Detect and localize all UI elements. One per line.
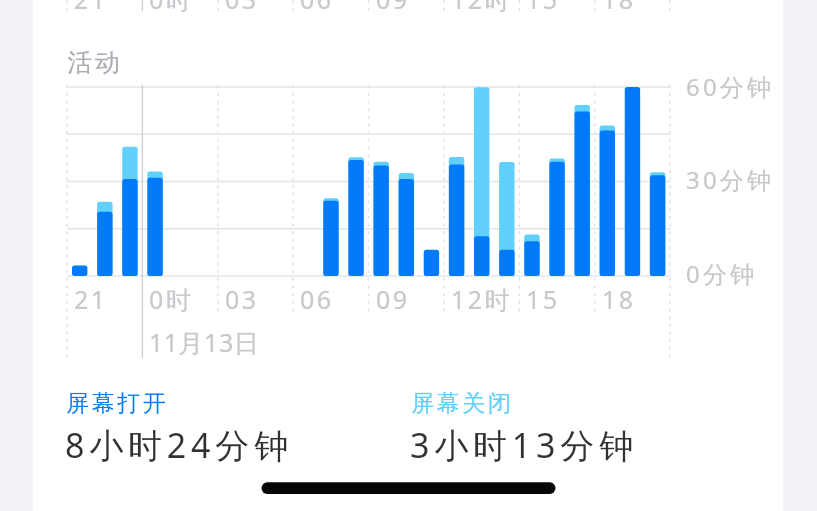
staticText: 30分钟 <box>686 163 775 196</box>
staticText: 15 <box>526 282 560 316</box>
staticText: 屏幕打开 <box>65 389 167 418</box>
button[interactable]: 主屏幕指示条 <box>261 478 556 498</box>
staticText: 09 <box>376 282 410 316</box>
staticText: 屏幕关闭 <box>410 389 512 418</box>
staticText: 18 <box>602 282 636 316</box>
staticText: 3小时13分钟 <box>410 422 638 468</box>
button[interactable]: 活动图表 <box>67 81 670 282</box>
staticText: 0时 <box>149 282 194 316</box>
staticText: 18 <box>602 0 636 16</box>
staticText: 09 <box>376 0 410 16</box>
staticText: 03 <box>225 0 259 16</box>
staticText: 11月13日 <box>149 325 260 359</box>
staticText: 0分钟 <box>686 257 758 290</box>
staticText: 06 <box>300 282 334 316</box>
staticText: 8小时24分钟 <box>65 422 293 468</box>
staticText: 21 <box>74 282 108 316</box>
staticText: 12时 <box>451 282 513 316</box>
staticText: 0时 <box>149 0 194 16</box>
staticText: 06 <box>300 0 334 16</box>
staticText: 活动 <box>66 47 121 78</box>
button[interactable]: 屏幕关闭 <box>410 389 638 464</box>
staticText: 12时 <box>451 0 513 16</box>
button[interactable]: 屏幕打开 <box>65 389 293 464</box>
staticText: 60分钟 <box>686 70 775 103</box>
staticText: 03 <box>225 282 259 316</box>
staticText: 21 <box>74 0 108 16</box>
staticText: 15 <box>526 0 560 16</box>
